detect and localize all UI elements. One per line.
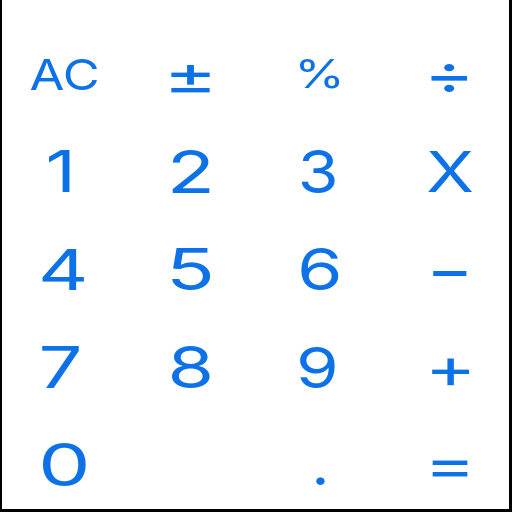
staticText: 1: [45, 136, 77, 206]
staticText: 4: [38, 235, 89, 303]
button[interactable]: 4: [0, 220, 128, 318]
button[interactable]: −: [385, 220, 512, 318]
button[interactable]: 7: [0, 318, 125, 416]
staticText: 5: [166, 234, 215, 304]
button[interactable]: 0: [0, 415, 129, 512]
button[interactable]: ÷: [385, 25, 512, 123]
button[interactable]: 1: [0, 122, 125, 220]
button[interactable]: 8: [126, 318, 255, 416]
staticText: 3: [298, 136, 339, 207]
staticText: .: [311, 429, 330, 499]
staticText: 6: [297, 234, 343, 304]
button[interactable]: AC: [0, 25, 129, 123]
button[interactable]: 9: [253, 318, 382, 416]
staticText: 0: [38, 429, 91, 500]
staticText: ÷: [424, 40, 476, 108]
staticText: %: [294, 50, 345, 98]
button[interactable]: ±: [126, 25, 255, 123]
staticText: 2: [167, 136, 215, 207]
button[interactable]: +: [386, 318, 512, 416]
button[interactable]: 2: [126, 122, 255, 220]
staticText: ±: [163, 42, 219, 107]
staticText: −: [426, 233, 474, 306]
staticText: +: [425, 333, 477, 402]
button[interactable]: %: [255, 25, 384, 123]
button[interactable]: X: [386, 122, 512, 220]
button[interactable]: 6: [255, 220, 384, 318]
staticText: AC: [30, 48, 100, 100]
staticText: X: [426, 137, 475, 205]
button[interactable]: =: [386, 415, 512, 512]
button[interactable]: 5: [126, 220, 255, 318]
staticText: 7: [38, 332, 83, 402]
staticText: 9: [296, 333, 340, 401]
staticText: 8: [167, 332, 215, 402]
staticText: =: [424, 431, 477, 498]
button[interactable]: 3: [254, 122, 383, 220]
button[interactable]: .: [256, 415, 385, 512]
